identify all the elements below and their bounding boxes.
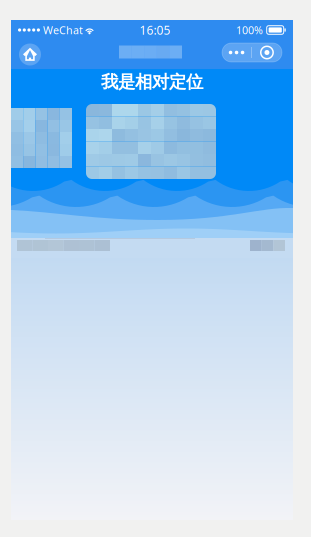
staticText: WeChat <box>43 23 83 37</box>
staticText: 100% <box>236 23 263 37</box>
staticText: 16:05 <box>139 22 170 38</box>
staticText: 我是相对定位 <box>101 71 203 93</box>
button[interactable]: Close mini program <box>252 43 282 62</box>
button[interactable]: Home <box>17 41 43 67</box>
button[interactable]: More <box>222 43 251 62</box>
